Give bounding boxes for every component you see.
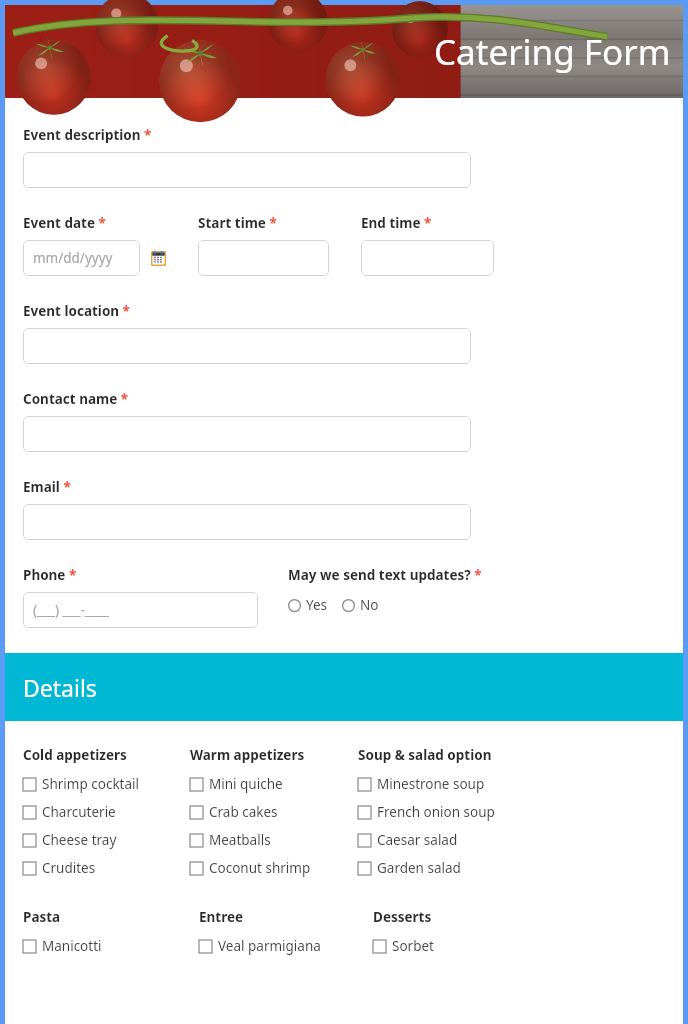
button[interactable]: Meatballs: [190, 826, 271, 854]
button[interactable]: [361, 240, 494, 276]
staticText: Manicotti: [42, 937, 102, 955]
staticText: Cheese tray: [42, 831, 117, 849]
button[interactable]: [198, 240, 329, 276]
staticText: Yes: [306, 596, 328, 614]
staticText: Coconut shrimp: [209, 859, 311, 877]
button[interactable]: Mini quiche: [190, 770, 283, 798]
button[interactable]: Crab cakes: [190, 798, 278, 826]
staticText: Contact name *: [23, 390, 129, 408]
staticText: Mini quiche: [209, 775, 283, 793]
staticText: Event description *: [23, 126, 152, 144]
staticText: French onion soup: [377, 803, 495, 821]
button[interactable]: mm/dd/yyyy: [23, 240, 140, 276]
staticText: Crudites: [42, 859, 96, 877]
button[interactable]: No: [342, 596, 379, 614]
staticText: Event date *: [23, 214, 106, 232]
staticText: Catering Form: [434, 28, 671, 76]
staticText: Cold appetizers: [23, 746, 127, 764]
staticText: Charcuterie: [42, 803, 116, 821]
button[interactable]: Shrimp cocktail: [23, 770, 139, 798]
staticText: Meatballs: [209, 831, 271, 849]
staticText: Entree: [199, 908, 244, 926]
staticText: Email *: [23, 478, 71, 496]
button[interactable]: Details: [5, 653, 683, 721]
button[interactable]: [23, 328, 471, 364]
button[interactable]: (___) ___-____: [23, 592, 258, 628]
button[interactable]: Garden salad: [358, 854, 461, 882]
staticText: Minestrone soup: [377, 775, 485, 793]
button[interactable]: [23, 416, 471, 452]
staticText: Garden salad: [377, 859, 461, 877]
staticText: Event location *: [23, 302, 130, 320]
staticText: Crab cakes: [209, 803, 278, 821]
button[interactable]: [23, 504, 471, 540]
staticText: Sorbet: [392, 937, 434, 955]
staticText: Desserts: [373, 908, 432, 926]
button[interactable]: Charcuterie: [23, 798, 116, 826]
button[interactable]: Caesar salad: [358, 826, 458, 854]
staticText: Details: [23, 672, 97, 703]
button[interactable]: Pick date: [149, 249, 167, 267]
staticText: Caesar salad: [377, 831, 458, 849]
button[interactable]: Manicotti: [23, 932, 102, 960]
staticText: Start time *: [198, 214, 277, 232]
button[interactable]: French onion soup: [358, 798, 495, 826]
staticText: May we send text updates? *: [288, 566, 482, 584]
staticText: Shrimp cocktail: [42, 775, 139, 793]
staticText: Pasta: [23, 908, 61, 926]
button[interactable]: Sorbet: [373, 932, 434, 960]
staticText: Soup & salad option: [358, 746, 492, 764]
button[interactable]: Veal parmigiana: [199, 932, 321, 960]
staticText: Phone *: [23, 566, 77, 584]
staticText: Warm appetizers: [190, 746, 305, 764]
button[interactable]: Yes: [288, 596, 328, 614]
staticText: (___) ___-____: [33, 601, 109, 619]
staticText: End time *: [361, 214, 432, 232]
button[interactable]: [23, 152, 471, 188]
staticText: Veal parmigiana: [218, 937, 321, 955]
button[interactable]: Coconut shrimp: [190, 854, 311, 882]
button[interactable]: Minestrone soup: [358, 770, 485, 798]
button[interactable]: Crudites: [23, 854, 96, 882]
staticText: mm/dd/yyyy: [33, 249, 113, 267]
button[interactable]: Cheese tray: [23, 826, 117, 854]
staticText: No: [360, 596, 379, 614]
